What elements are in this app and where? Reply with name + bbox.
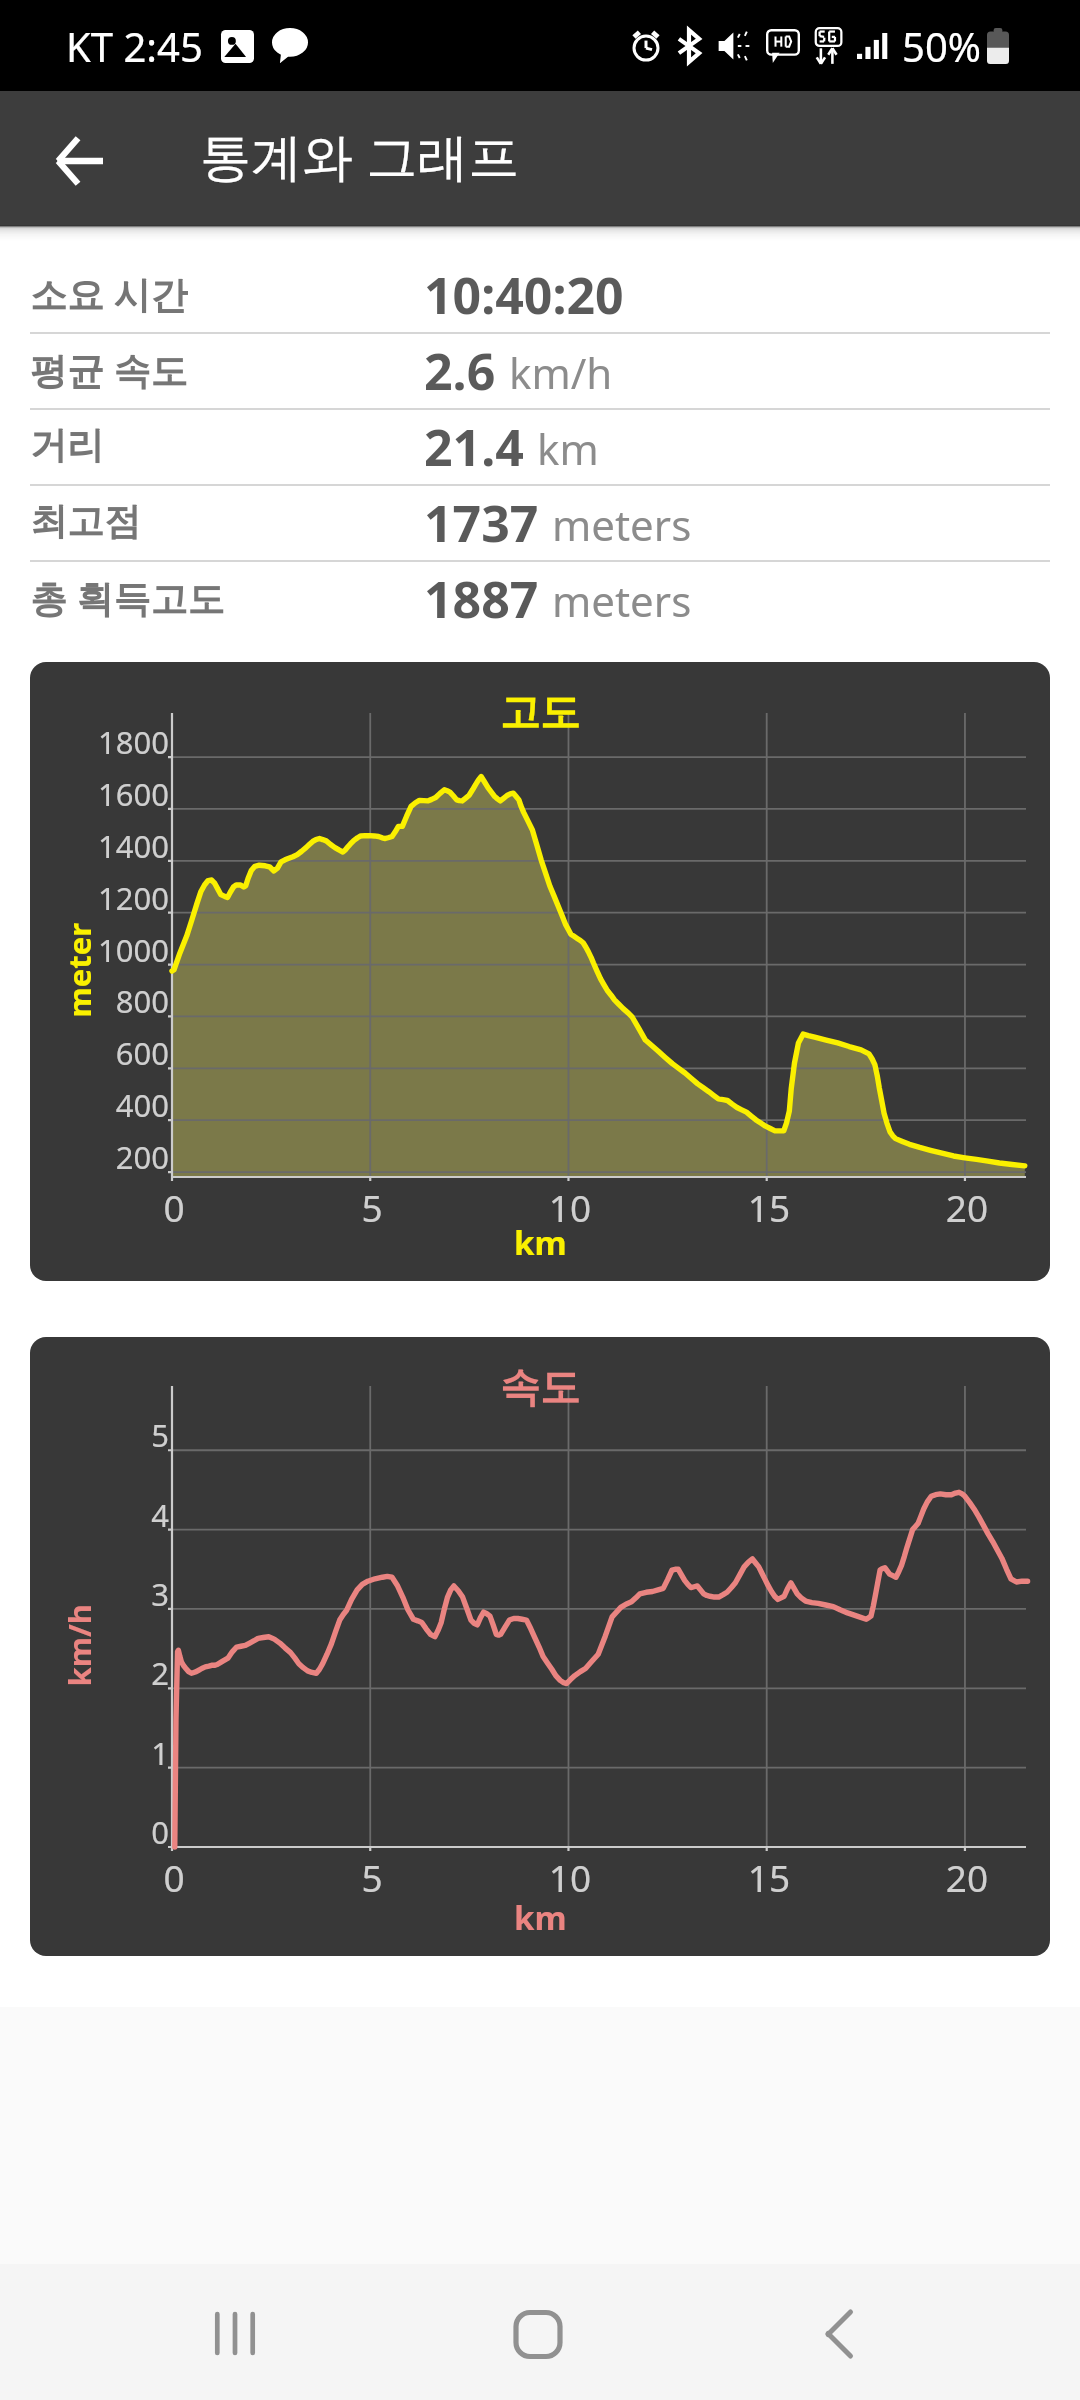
staticText: 소요 시간	[30, 268, 188, 319]
staticText: 1737	[424, 489, 539, 557]
staticText: meter	[57, 922, 99, 1017]
staticText: 5	[342, 1852, 402, 1902]
staticText: 20	[937, 1182, 997, 1232]
button[interactable]: 최고점	[0, 486, 1080, 560]
staticText: 1	[30, 1732, 169, 1774]
staticText: 10	[540, 1852, 600, 1902]
button[interactable]: 총 획득고도	[0, 562, 1080, 636]
staticText: 1000	[30, 929, 169, 971]
button[interactable]: Recent apps	[175, 2264, 295, 2400]
staticText: 50%	[902, 19, 981, 73]
staticText: 고도	[500, 687, 580, 737]
staticText: 21.4	[424, 413, 524, 481]
staticText: 20	[937, 1852, 997, 1902]
button[interactable]: Home	[478, 2264, 598, 2400]
staticText: 거리	[30, 422, 104, 469]
staticText: 속도	[500, 1362, 580, 1412]
staticText: 2.6	[424, 337, 496, 405]
button[interactable]: Speed chart	[30, 1337, 1050, 1956]
button[interactable]: 평균 속도	[0, 334, 1080, 408]
staticText: 1400	[30, 825, 169, 867]
staticText: 통계와 그래프	[200, 120, 520, 190]
staticText: 5	[30, 1414, 169, 1456]
staticText: KT 2:45	[66, 19, 203, 73]
staticText: 10:40:20	[424, 261, 624, 329]
staticText: 4	[30, 1494, 169, 1536]
staticText: meters	[552, 572, 692, 629]
staticText: 0	[144, 1852, 204, 1902]
button[interactable]: 소요 시간	[0, 258, 1080, 332]
staticText: 400	[30, 1084, 169, 1126]
staticText: km	[514, 1220, 567, 1265]
staticText: 1887	[424, 565, 539, 633]
staticText: 5	[342, 1182, 402, 1232]
staticText: km/h	[57, 1603, 99, 1686]
button[interactable]: 거리	[0, 410, 1080, 484]
staticText: km	[537, 420, 599, 477]
staticText: 0	[30, 1811, 169, 1853]
staticText: 15	[739, 1182, 799, 1232]
staticText: 총 획득고도	[30, 572, 225, 623]
staticText: 10	[540, 1182, 600, 1232]
staticText: 200	[30, 1136, 169, 1178]
staticText: km	[514, 1895, 567, 1940]
staticText: 800	[30, 980, 169, 1022]
staticText: 평균 속도	[30, 344, 188, 395]
button[interactable]: Back	[25, 107, 133, 215]
staticText: km/h	[509, 344, 613, 401]
button[interactable]: Elevation chart	[30, 662, 1050, 1281]
staticText: 최고점	[30, 498, 141, 545]
staticText: 15	[739, 1852, 799, 1902]
button[interactable]: Back	[780, 2264, 900, 2400]
staticText: 1600	[30, 773, 169, 815]
staticText: 1200	[30, 877, 169, 919]
staticText: 2	[30, 1652, 169, 1694]
staticText: 600	[30, 1032, 169, 1074]
staticText: 3	[30, 1573, 169, 1615]
staticText: meters	[552, 496, 692, 553]
staticText: 1800	[30, 721, 169, 763]
staticText: 0	[144, 1182, 204, 1232]
